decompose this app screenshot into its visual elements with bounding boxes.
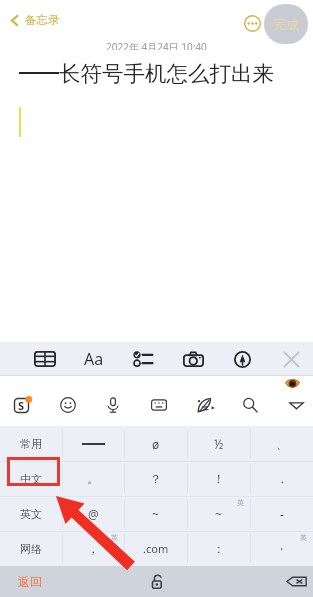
button[interactable]: Emoji bbox=[54, 391, 82, 419]
staticText: ~ bbox=[215, 506, 222, 522]
staticText: 网络 bbox=[20, 542, 42, 556]
button[interactable] bbox=[62, 426, 124, 461]
button[interactable]: 英文 bbox=[0, 496, 62, 531]
button[interactable]: ， bbox=[62, 531, 124, 566]
staticText: 英 bbox=[111, 533, 118, 542]
button[interactable]: Backspace bbox=[279, 566, 313, 597]
staticText: ！ bbox=[213, 471, 225, 486]
button[interactable]: ： bbox=[187, 531, 250, 566]
staticText: ． bbox=[276, 471, 288, 486]
staticText: 返回 bbox=[18, 574, 42, 589]
staticText: 。 bbox=[87, 471, 99, 486]
staticText: 英文 bbox=[20, 507, 42, 521]
button[interactable]: Draw bbox=[228, 345, 256, 373]
staticText: 常用 bbox=[20, 437, 42, 451]
button[interactable]: More options bbox=[241, 12, 263, 34]
staticText: 英 bbox=[300, 533, 307, 542]
staticText: ½ bbox=[214, 436, 224, 452]
button[interactable]: 完成 bbox=[264, 4, 308, 44]
button[interactable]: ！ bbox=[187, 461, 250, 496]
button[interactable]: Hide keyboard bbox=[282, 391, 310, 419]
staticText: .com bbox=[143, 541, 169, 556]
button[interactable]: ． bbox=[250, 461, 313, 496]
button[interactable]: ½ bbox=[187, 426, 250, 461]
staticText: 英 bbox=[237, 498, 244, 507]
button[interactable]: · bbox=[250, 531, 313, 566]
button[interactable]: Text style bbox=[80, 345, 108, 373]
staticText: 长符号手机怎么打出来 bbox=[16, 58, 274, 86]
staticText: ？ bbox=[150, 471, 162, 486]
button[interactable]: Voice input bbox=[99, 391, 127, 419]
button[interactable]: 、 bbox=[250, 426, 313, 461]
staticText: ： bbox=[213, 541, 225, 556]
button[interactable]: Search bbox=[236, 391, 264, 419]
button[interactable]: Input method bbox=[8, 391, 36, 419]
button[interactable]: Lock keyboard bbox=[122, 566, 192, 597]
button[interactable]: ~ bbox=[187, 496, 250, 531]
staticText: Aa bbox=[84, 348, 104, 370]
staticText: 、 bbox=[276, 436, 288, 451]
button[interactable]: Insert table bbox=[31, 345, 59, 373]
button[interactable]: 常用 bbox=[0, 426, 62, 461]
button[interactable]: 网络 bbox=[0, 531, 62, 566]
button[interactable]: ~ bbox=[124, 496, 187, 531]
staticText: 中文 bbox=[20, 472, 42, 486]
staticText: 完成 bbox=[273, 16, 299, 32]
button[interactable]: ø bbox=[124, 426, 187, 461]
staticText: ~ bbox=[152, 506, 159, 522]
staticText: - bbox=[280, 506, 284, 522]
staticText: 2022年 4月24日 10:40 bbox=[106, 40, 207, 50]
button[interactable]: ？ bbox=[124, 461, 187, 496]
staticText: @ bbox=[88, 506, 99, 522]
button[interactable]: Keyboard bbox=[145, 391, 173, 419]
staticText: S bbox=[18, 398, 25, 413]
staticText: 备忘录 bbox=[25, 13, 60, 27]
button[interactable]: 备忘录 bbox=[9, 13, 60, 27]
button[interactable]: 。 bbox=[62, 461, 124, 496]
staticText: ø bbox=[152, 436, 160, 452]
button[interactable]: Handwriting bbox=[191, 391, 219, 419]
button[interactable]: - bbox=[250, 496, 313, 531]
button[interactable]: .com bbox=[124, 531, 187, 566]
button[interactable]: Camera bbox=[179, 345, 207, 373]
button[interactable]: @ bbox=[62, 496, 124, 531]
staticText: · bbox=[280, 541, 284, 557]
button[interactable]: Close bbox=[277, 345, 305, 373]
button[interactable]: 返回 bbox=[0, 566, 60, 597]
button[interactable]: 中文 bbox=[0, 461, 62, 496]
staticText: ， bbox=[87, 541, 99, 556]
button[interactable]: Checklist bbox=[129, 345, 157, 373]
